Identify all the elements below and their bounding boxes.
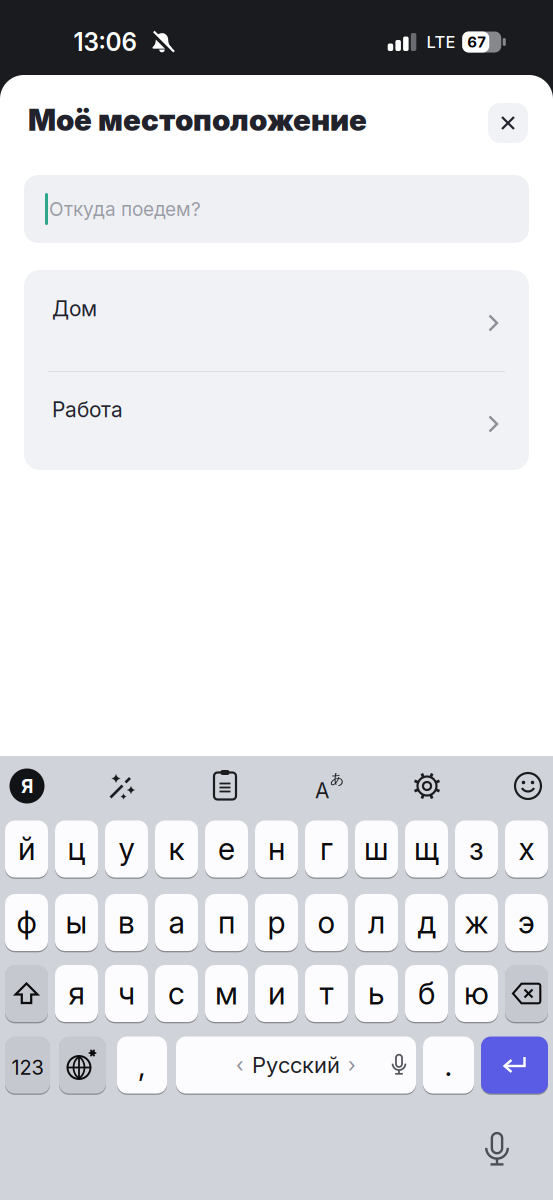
button[interactable]: Настройки — [413, 772, 441, 800]
button[interactable]: ш — [355, 820, 398, 878]
staticText: ч — [118, 975, 135, 1012]
staticText: Работа — [52, 397, 123, 422]
staticText: э — [518, 904, 535, 941]
staticText: х — [518, 830, 534, 867]
button[interactable]: з — [455, 820, 498, 878]
button[interactable]: Shift — [5, 964, 48, 1022]
button[interactable]: ф — [5, 893, 48, 951]
staticText: 123 — [11, 1055, 43, 1080]
button[interactable]: Эмодзи — [514, 772, 542, 800]
staticText: е — [218, 830, 235, 867]
button[interactable]: , — [117, 1036, 167, 1094]
staticText: Откуда поедем? — [49, 197, 201, 220]
staticText: . — [444, 1047, 452, 1083]
button[interactable]: Пробел — [176, 1036, 416, 1094]
staticText: з — [469, 830, 484, 867]
button[interactable]: м — [205, 964, 248, 1022]
button[interactable]: в — [105, 893, 148, 951]
staticText: Я — [21, 774, 33, 797]
button[interactable]: с — [155, 964, 198, 1022]
staticText: й — [18, 830, 35, 867]
button[interactable]: и — [255, 964, 298, 1022]
staticText: › — [348, 1053, 356, 1077]
staticText: к — [168, 830, 184, 867]
button[interactable]: Ввод — [481, 1036, 548, 1094]
staticText: н — [268, 830, 285, 867]
staticText: ж — [464, 904, 488, 941]
button[interactable]: к — [155, 820, 198, 878]
button[interactable]: 123 — [5, 1036, 50, 1094]
button[interactable]: Магия — [106, 771, 136, 800]
button[interactable]: ж — [455, 893, 498, 951]
button[interactable]: е — [205, 820, 248, 878]
button[interactable]: у — [105, 820, 148, 878]
staticText: あ — [330, 770, 344, 788]
staticText: 13:06 — [73, 27, 136, 57]
button[interactable]: а — [155, 893, 198, 951]
staticText: щ — [414, 830, 439, 867]
button[interactable]: п — [205, 893, 248, 951]
button[interactable]: Дом — [24, 270, 529, 371]
staticText: ‹ — [236, 1053, 244, 1077]
button[interactable]: Delete — [505, 964, 548, 1022]
staticText: в — [118, 904, 135, 941]
staticText: п — [218, 904, 235, 941]
button[interactable]: б — [405, 964, 448, 1022]
button[interactable]: Сменить язык — [59, 1036, 106, 1094]
staticText: ь — [368, 975, 385, 1012]
staticText: ы — [65, 904, 87, 941]
button[interactable]: ч — [105, 964, 148, 1022]
button[interactable]: д — [405, 893, 448, 951]
button[interactable]: г — [305, 820, 348, 878]
button[interactable]: р — [255, 893, 298, 951]
button[interactable]: Диктовка — [483, 1132, 510, 1168]
staticText: Моё местоположение — [28, 102, 367, 138]
button[interactable]: х — [505, 820, 548, 878]
button[interactable]: Яндекс — [9, 768, 44, 803]
staticText: , — [138, 1047, 146, 1083]
staticText: ю — [464, 975, 489, 1012]
button[interactable]: ь — [355, 964, 398, 1022]
button[interactable]: т — [305, 964, 348, 1022]
button[interactable]: Буфер обмена — [212, 771, 238, 801]
staticText: ц — [67, 830, 85, 867]
button[interactable]: н — [255, 820, 298, 878]
staticText: LTE — [426, 32, 455, 52]
staticText: у — [118, 830, 134, 867]
staticText: с — [168, 975, 185, 1012]
staticText: Русский — [252, 1052, 340, 1078]
staticText: ф — [16, 904, 36, 941]
staticText: 67 — [467, 33, 486, 51]
button[interactable]: л — [355, 893, 398, 951]
staticText: о — [317, 904, 335, 941]
staticText: л — [368, 904, 385, 941]
button[interactable]: ц — [55, 820, 98, 878]
button[interactable]: й — [5, 820, 48, 878]
staticText: г — [320, 830, 333, 867]
button[interactable]: Close — [488, 103, 528, 143]
button[interactable]: . — [423, 1036, 474, 1094]
staticText: я — [68, 975, 84, 1012]
staticText: и — [268, 975, 285, 1012]
button[interactable]: Перевод — [315, 772, 345, 800]
button[interactable]: щ — [405, 820, 448, 878]
button[interactable]: ю — [455, 964, 498, 1022]
staticText: т — [319, 975, 333, 1012]
staticText: д — [417, 904, 435, 941]
staticText: Дом — [52, 296, 97, 321]
staticText: а — [168, 904, 184, 941]
button[interactable]: я — [55, 964, 98, 1022]
staticText: ш — [364, 830, 389, 867]
button[interactable]: ы — [55, 893, 98, 951]
button[interactable]: Откуда поедем? — [24, 175, 529, 243]
button[interactable]: э — [505, 893, 548, 951]
staticText: р — [267, 904, 285, 941]
button[interactable]: о — [305, 893, 348, 951]
staticText: б — [418, 975, 435, 1012]
button[interactable]: Работа — [24, 372, 529, 470]
staticText: A — [315, 778, 329, 803]
staticText: м — [215, 975, 238, 1012]
